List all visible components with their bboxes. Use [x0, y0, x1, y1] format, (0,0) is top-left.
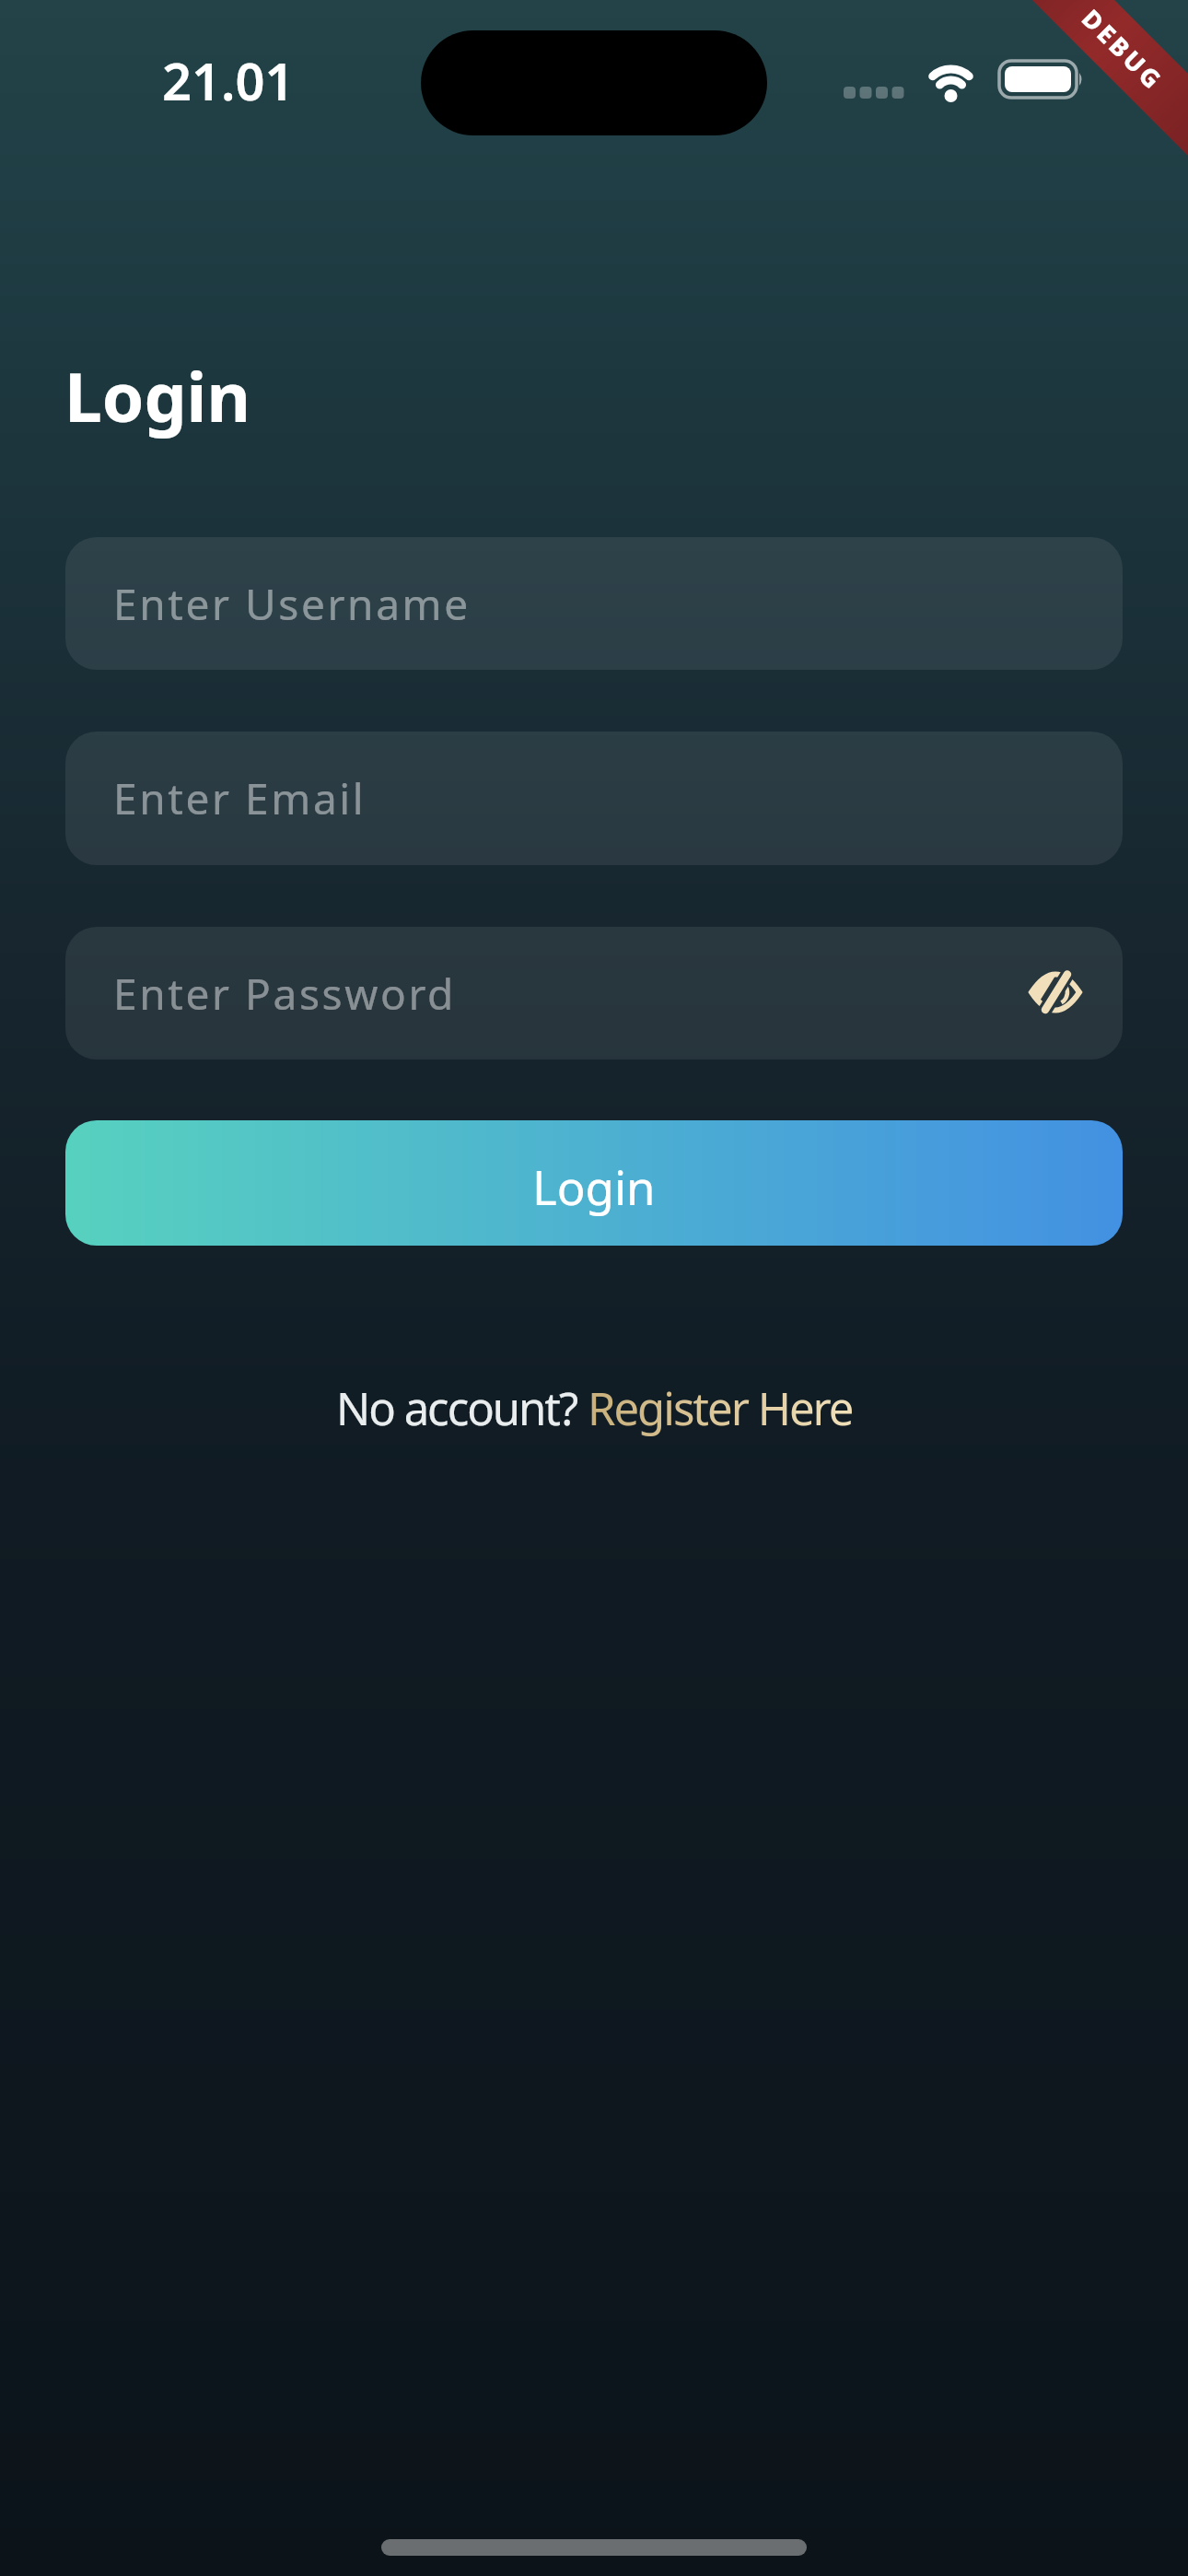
- button[interactable]: Register Here: [588, 1377, 853, 1439]
- staticText: 21.01: [162, 45, 295, 115]
- staticText: No account?: [336, 1377, 588, 1439]
- staticText: Login: [532, 1154, 656, 1218]
- staticText: DEBUG: [1075, 1, 1171, 98]
- staticText: Enter Password: [113, 965, 456, 1023]
- button[interactable]: Login: [65, 1120, 1123, 1246]
- button[interactable]: Enter Username: [65, 537, 1123, 670]
- button[interactable]: Enter Email: [65, 732, 1123, 865]
- button[interactable]: Enter Password: [65, 927, 1123, 1060]
- staticText: Enter Username: [113, 575, 471, 633]
- staticText: Enter Email: [113, 769, 367, 827]
- staticText: Login: [64, 350, 250, 441]
- button[interactable]: [1031, 972, 1080, 1014]
